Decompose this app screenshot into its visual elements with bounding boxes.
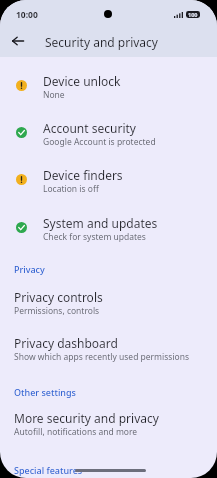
staticText: More security and privacy: [14, 410, 159, 426]
button[interactable]: Special features: [14, 464, 83, 476]
button[interactable]: Device finders: [0, 156, 217, 203]
staticText: Check for system updates: [43, 231, 146, 243]
staticText: Privacy controls: [14, 289, 103, 305]
staticText: Special features: [14, 464, 83, 476]
button[interactable]: Other settings: [14, 386, 76, 398]
staticText: 10:00: [16, 9, 38, 21]
button[interactable]: Privacy: [14, 263, 45, 275]
staticText: Other settings: [14, 386, 76, 398]
staticText: Show which apps recently used permission…: [14, 351, 190, 363]
button[interactable]: Device unlock: [0, 62, 217, 109]
staticText: System and updates: [43, 215, 158, 231]
staticText: Device finders: [43, 167, 123, 183]
button[interactable]: Privacy dashboard: [0, 334, 217, 372]
staticText: 100: [188, 11, 198, 18]
button[interactable]: Back: [5, 28, 31, 54]
staticText: Privacy: [14, 263, 45, 275]
staticText: Device unlock: [43, 73, 121, 89]
staticText: Autofill, notifications and more: [14, 426, 138, 438]
staticText: Security and privacy: [45, 34, 158, 50]
staticText: Location is off: [43, 183, 99, 195]
staticText: None: [43, 89, 65, 101]
staticText: Google Account is protected: [43, 136, 156, 148]
staticText: Account security: [43, 120, 136, 136]
button[interactable]: Privacy controls: [0, 288, 217, 326]
button[interactable]: More security and privacy: [0, 409, 217, 447]
button[interactable]: System and updates: [0, 204, 217, 251]
staticText: Permissions, controls: [14, 305, 100, 317]
button[interactable]: Account security: [0, 109, 217, 156]
staticText: Privacy dashboard: [14, 335, 118, 351]
